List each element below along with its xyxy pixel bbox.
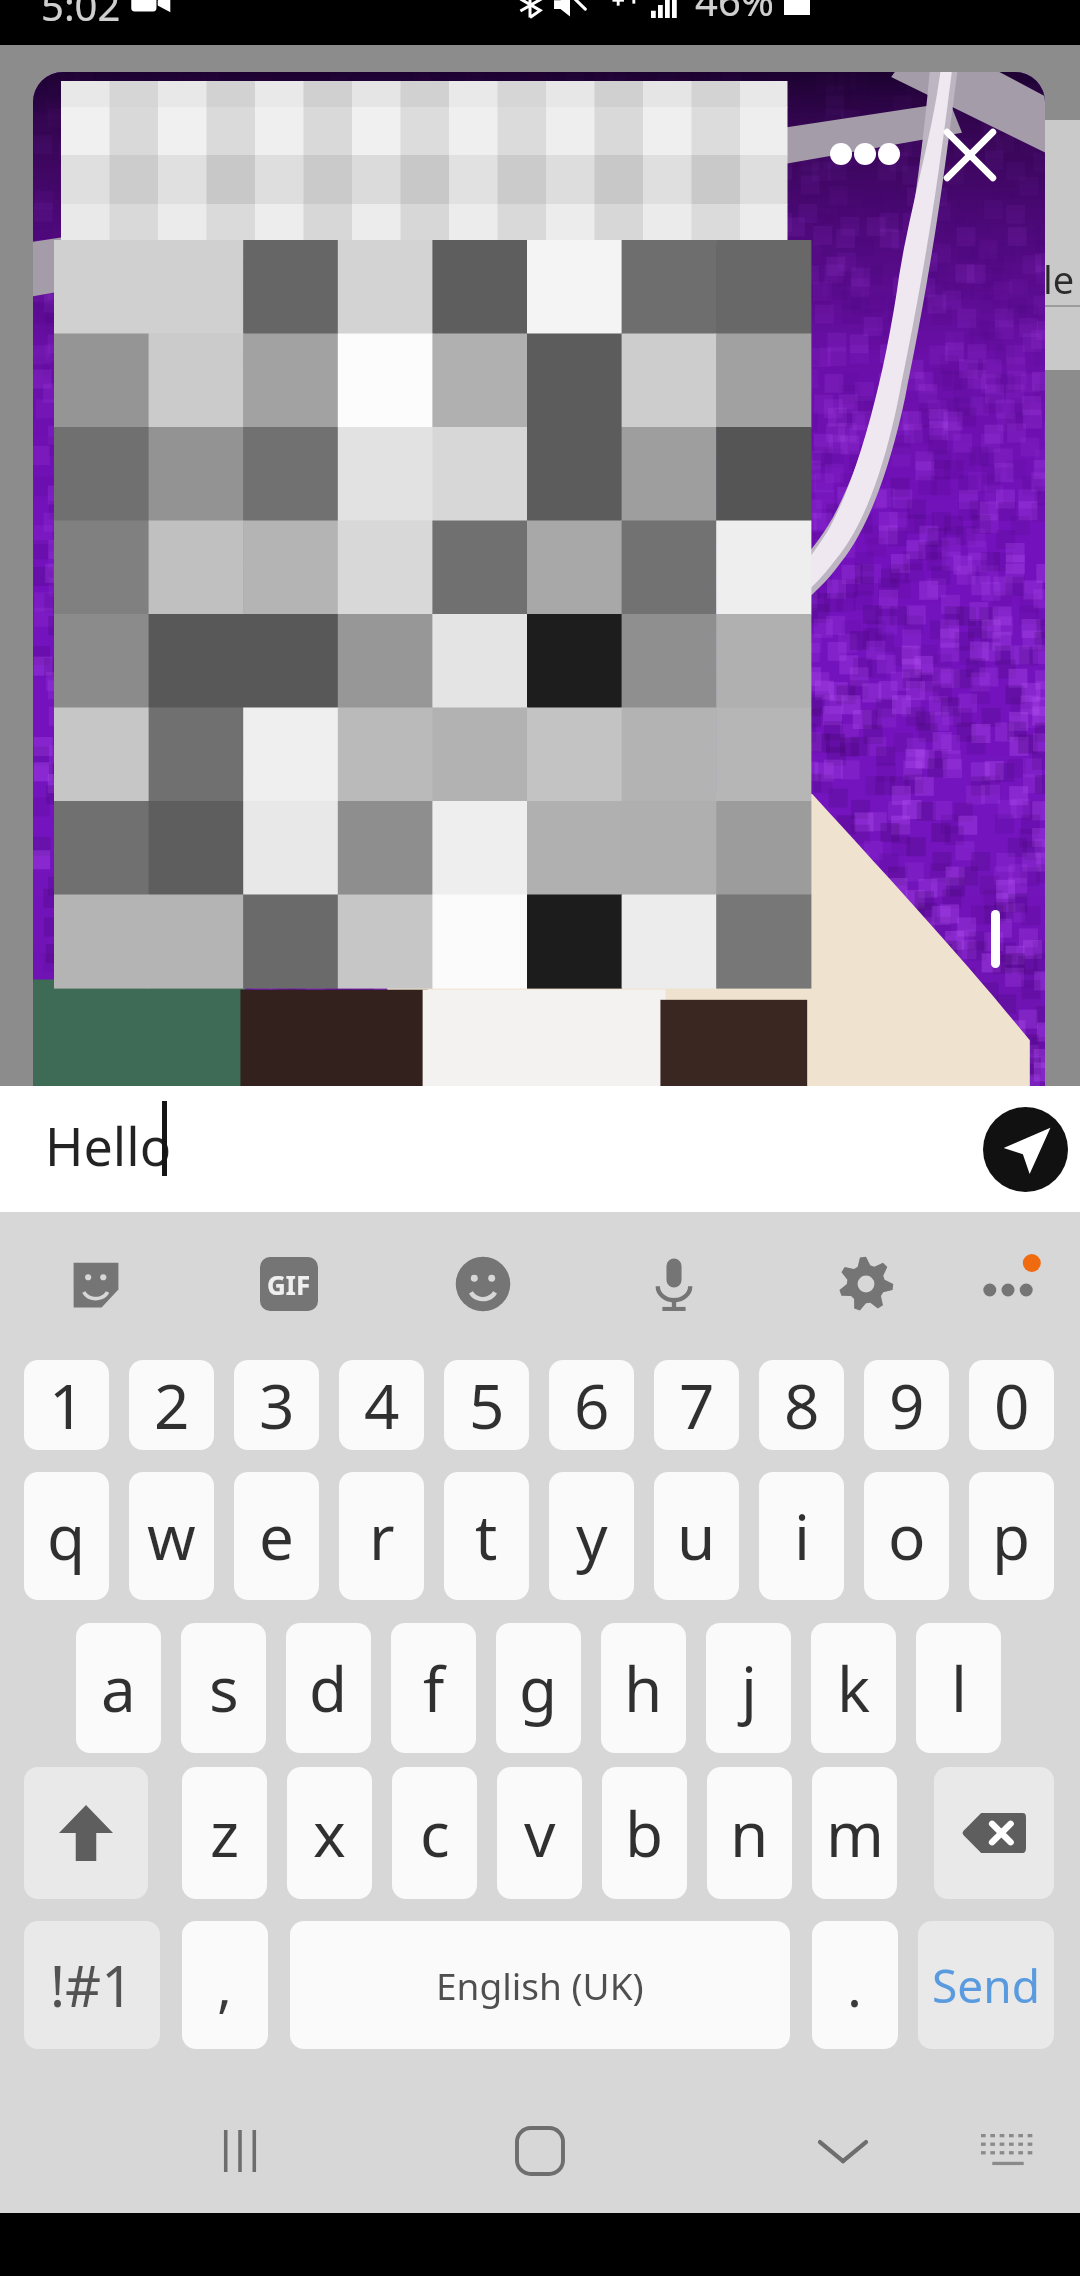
button[interactable]: Change keyboard [948,2106,1068,2196]
staticText: p [992,1494,1031,1578]
staticText: f [423,1646,445,1730]
staticText: Hello [45,1110,172,1181]
staticText: 4 [364,1363,400,1447]
staticText: u [677,1494,716,1578]
button[interactable]: o [864,1472,949,1600]
button[interactable]: 7 [654,1360,739,1450]
button[interactable]: w [129,1472,214,1600]
button[interactable]: English (UK) [290,1921,790,2049]
button[interactable]: 9 [864,1360,949,1450]
button[interactable]: l [916,1623,1001,1753]
button[interactable]: x [287,1767,372,1899]
button[interactable]: y [549,1472,634,1600]
staticText: g [519,1646,558,1730]
staticText: i [794,1494,810,1578]
button[interactable]: t [444,1472,529,1600]
staticText: 2 [154,1363,190,1447]
button[interactable]: Hide keyboard [783,2106,903,2196]
button[interactable]: 6 [549,1360,634,1450]
staticText: x [313,1791,346,1875]
staticText: e [259,1494,294,1578]
button[interactable]: GIF [234,1229,344,1339]
button[interactable]: Send [983,1107,1068,1192]
button[interactable]: k [811,1623,896,1753]
staticText: !#1 [50,1947,134,2023]
button[interactable]: Close [915,100,1025,210]
staticText: y [576,1494,608,1578]
staticText: 9 [889,1363,925,1447]
button[interactable]: !#1 [24,1921,160,2049]
staticText: n [730,1791,769,1875]
staticText: o [888,1494,926,1578]
button[interactable]: More options [810,99,920,209]
staticText: 8 [784,1363,820,1447]
button[interactable]: b [602,1767,687,1899]
staticText: , [217,1947,233,2023]
button[interactable]: g [496,1623,581,1753]
button[interactable]: q [24,1472,109,1600]
staticText: d [309,1646,348,1730]
staticText: Send [932,1954,1040,2017]
staticText: 0 [994,1363,1030,1447]
button[interactable]: u [654,1472,739,1600]
button[interactable]: n [707,1767,792,1899]
button[interactable]: . [812,1921,898,2049]
button[interactable]: 4 [339,1360,424,1450]
staticText: w [147,1494,196,1578]
button[interactable]: z [182,1767,267,1899]
button[interactable]: d [286,1623,371,1753]
staticText: h [624,1646,663,1730]
staticText: t [475,1494,498,1578]
button[interactable]: Send [918,1921,1054,2049]
button[interactable]: Recents [180,2106,300,2196]
staticText: z [210,1791,240,1875]
staticText: s [209,1646,239,1730]
staticText: r [369,1494,395,1578]
button[interactable]: , [182,1921,268,2049]
button[interactable]: Home [480,2106,600,2196]
staticText: 7 [679,1363,715,1447]
button[interactable]: i [759,1472,844,1600]
button[interactable]: v [497,1767,582,1899]
staticText: 5 [469,1363,505,1447]
staticText: v [524,1791,556,1875]
staticText: q [47,1494,86,1578]
button[interactable]: h [601,1623,686,1753]
button[interactable]: j [706,1623,791,1753]
staticText: 1 [49,1363,85,1447]
button[interactable]: m [812,1767,897,1899]
button[interactable]: Settings [811,1229,921,1339]
button[interactable]: f [391,1623,476,1753]
staticText: le [1043,253,1075,305]
staticText: English (UK) [436,1960,644,2010]
button[interactable]: a [76,1623,161,1753]
staticText: b [625,1791,664,1875]
staticText: 3 [259,1363,295,1447]
button[interactable]: p [969,1472,1054,1600]
button[interactable]: 3 [234,1360,319,1450]
staticText: 5:02 [41,0,121,23]
staticText: 46% [695,0,774,18]
staticText: 6 [574,1363,610,1447]
staticText: l [951,1646,967,1730]
button[interactable]: 8 [759,1360,844,1450]
button[interactable]: Stickers [41,1229,151,1339]
button[interactable]: c [392,1767,477,1899]
button[interactable]: r [339,1472,424,1600]
button[interactable]: 2 [129,1360,214,1450]
staticText: m [826,1791,884,1875]
button[interactable]: Backspace [934,1767,1054,1899]
staticText: k [837,1646,871,1730]
staticText: c [420,1791,450,1875]
staticText: . [847,1947,863,2023]
button[interactable]: 5 [444,1360,529,1450]
button[interactable]: Voice input [619,1229,729,1339]
button[interactable]: Emoji [428,1229,538,1339]
button[interactable]: 1 [24,1360,109,1450]
button[interactable]: s [181,1623,266,1753]
button[interactable]: Shift [24,1767,148,1899]
staticText: j [741,1646,757,1730]
button[interactable]: e [234,1472,319,1600]
button[interactable]: More [953,1229,1063,1339]
button[interactable]: 0 [969,1360,1054,1450]
